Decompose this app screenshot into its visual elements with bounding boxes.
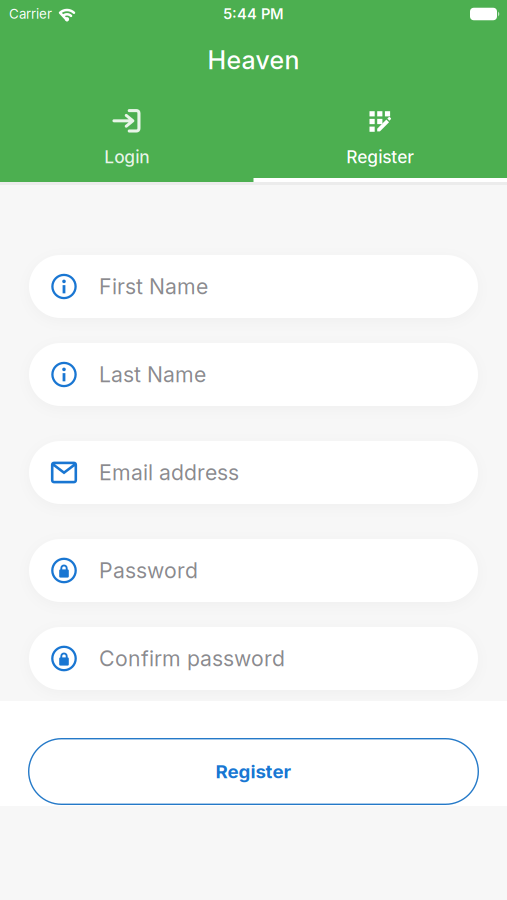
staticText: Login: [104, 147, 149, 167]
textField[interactable]: Email address: [29, 441, 478, 504]
staticText: Register: [215, 760, 291, 782]
staticText: Last Name: [99, 362, 206, 387]
textField[interactable]: Last Name: [29, 343, 478, 406]
staticText: Confirm password: [99, 646, 285, 671]
staticText: Register: [346, 147, 414, 167]
secureTextField[interactable]: Password: [29, 539, 478, 602]
staticText: Email address: [99, 460, 239, 485]
textField[interactable]: First Name: [29, 255, 478, 318]
button[interactable]: Register: [28, 738, 479, 805]
button[interactable]: Login: [0, 108, 253, 169]
staticText: 5:44 PM: [223, 5, 284, 23]
staticText: First Name: [99, 274, 208, 299]
staticText: Password: [99, 558, 198, 583]
button[interactable]: Register: [253, 108, 507, 169]
secureTextField[interactable]: Confirm password: [29, 627, 478, 690]
staticText: Heaven: [207, 45, 299, 75]
staticText: Carrier: [9, 6, 52, 22]
